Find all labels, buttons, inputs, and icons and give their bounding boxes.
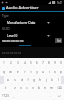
staticText: ⌫ <box>57 86 62 90</box>
staticText: e <box>17 70 19 74</box>
button[interactable]: c <box>24 84 30 92</box>
button[interactable]: Manufacturer Data <box>7 21 50 25</box>
staticText: ⇧ <box>4 86 7 90</box>
button[interactable]: 4 <box>21 58 28 67</box>
button[interactable]: p <box>58 67 64 76</box>
staticText: g <box>33 78 35 82</box>
staticText: f <box>27 78 29 82</box>
staticText: n <box>44 86 46 90</box>
button[interactable]: s <box>11 76 18 84</box>
button[interactable]: k <box>49 76 55 84</box>
staticText: . <box>50 94 51 98</box>
staticText: q <box>3 70 5 74</box>
button[interactable]: 7 <box>40 58 46 67</box>
button[interactable]: j <box>43 76 49 84</box>
staticText: ↵ <box>58 94 61 98</box>
button[interactable]: a <box>4 76 11 84</box>
button[interactable]: ↵ <box>54 92 64 100</box>
button[interactable]: 2 <box>7 58 14 67</box>
button[interactable]: m <box>48 84 54 92</box>
button[interactable]: Level 0 <box>7 34 50 38</box>
staticText: 7 <box>42 61 44 65</box>
button[interactable]: ⇧ <box>0 84 11 92</box>
button[interactable]: Audio Advertiser <box>0 5 64 11</box>
button[interactable]: u <box>40 67 46 76</box>
staticText: Manufacturer Data <box>7 21 36 25</box>
button[interactable]: d <box>18 76 25 84</box>
staticText: d <box>21 78 23 82</box>
button[interactable]: 0 <box>58 58 64 67</box>
staticText: 9:41 <box>57 1 63 5</box>
staticText: 3 <box>17 61 19 65</box>
button[interactable]: 9 <box>52 58 58 67</box>
staticText: 5 <box>30 61 32 65</box>
button[interactable]: Set <box>55 38 62 43</box>
staticText: Type <box>2 14 9 18</box>
staticText: o <box>54 70 56 74</box>
staticText: 6 <box>36 61 38 65</box>
button[interactable]: y <box>34 67 40 76</box>
staticText: y <box>36 70 38 74</box>
staticText: u <box>42 70 44 74</box>
button[interactable]: q <box>0 67 7 76</box>
staticText: t <box>30 70 32 74</box>
staticText: r <box>24 70 26 74</box>
button[interactable]: o <box>52 67 58 76</box>
staticText: v <box>32 86 34 90</box>
button[interactable]: 3 <box>14 58 21 67</box>
staticText: x <box>20 86 22 90</box>
staticText: Audio Advertiser <box>6 5 39 11</box>
staticText: c <box>26 86 28 90</box>
staticText: 4 <box>24 61 26 65</box>
staticText: j <box>46 78 47 82</box>
button[interactable]: t <box>28 67 34 76</box>
staticText: Level 0 <box>7 34 18 38</box>
button[interactable]: 6 <box>34 58 40 67</box>
staticText: 2 <box>10 61 12 65</box>
staticText: xx:xx:xx:xx:xx <box>2 51 22 55</box>
staticText: l <box>58 78 59 82</box>
staticText: Set <box>57 39 61 43</box>
staticText: 1 <box>3 61 5 65</box>
staticText: m <box>50 86 53 90</box>
button[interactable]: b <box>36 84 42 92</box>
staticText: , <box>13 94 14 98</box>
button[interactable]: ?123 <box>0 92 10 100</box>
button[interactable]: h <box>37 76 43 84</box>
staticText: p <box>60 70 62 74</box>
staticText: ?123 <box>2 94 9 98</box>
button[interactable]: x <box>18 84 24 92</box>
button[interactable]: ⌫ <box>54 84 64 92</box>
button[interactable]: r <box>21 67 28 76</box>
staticText: 8 <box>48 61 50 65</box>
staticText: i <box>49 70 50 74</box>
button[interactable]: xx:xx:xx:xx:xx <box>0 47 64 58</box>
staticText: xx:xx:xx:xx:xx <box>2 38 24 43</box>
button[interactable]: e <box>14 67 21 76</box>
button[interactable]: , <box>10 92 17 100</box>
staticText: k <box>51 78 53 82</box>
staticText: 9 <box>54 61 56 65</box>
button[interactable]: l <box>55 76 61 84</box>
staticText: UUID <box>2 27 10 31</box>
button[interactable]: 5 <box>28 58 34 67</box>
staticText: b <box>38 86 40 90</box>
button[interactable]: f <box>25 76 31 84</box>
button[interactable]: z <box>11 84 18 92</box>
staticText: s <box>14 78 16 82</box>
button[interactable]: g <box>31 76 37 84</box>
button[interactable]: w <box>7 67 14 76</box>
staticText: 0 <box>60 61 62 65</box>
staticText: w <box>9 70 12 74</box>
button[interactable]: v <box>30 84 36 92</box>
button[interactable]: n <box>42 84 48 92</box>
staticText: h <box>39 78 41 82</box>
button[interactable]: 1 <box>0 58 7 67</box>
button[interactable]: i <box>46 67 52 76</box>
staticText: z <box>14 86 16 90</box>
button[interactable]: 8 <box>46 58 52 67</box>
staticText: a <box>7 78 9 82</box>
